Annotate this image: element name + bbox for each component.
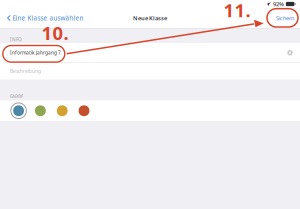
button[interactable]: Farbe auswählen xyxy=(32,103,48,119)
staticText: INFO xyxy=(10,36,22,42)
staticText: 11. xyxy=(223,0,250,22)
staticText: Informatik Jahrgang 7 xyxy=(10,50,61,56)
staticText: 92% xyxy=(273,0,284,8)
staticText: Eine Klasse auswählen xyxy=(12,14,83,22)
staticText: Beschreibung xyxy=(10,68,41,74)
button[interactable]: Text löschen xyxy=(283,46,297,60)
staticText: Neue Klasse xyxy=(133,14,167,22)
button[interactable]: Farbe auswählen xyxy=(11,103,27,119)
button[interactable]: Eine Klasse auswählen xyxy=(0,9,83,27)
button[interactable]: Farbe auswählen xyxy=(76,103,92,119)
staticText: 10. xyxy=(41,21,68,45)
staticText: Sichern xyxy=(276,14,294,22)
button[interactable]: Farbe auswählen xyxy=(54,103,70,119)
staticText: FARBE xyxy=(10,93,24,100)
button[interactable]: Sichern xyxy=(270,9,300,27)
